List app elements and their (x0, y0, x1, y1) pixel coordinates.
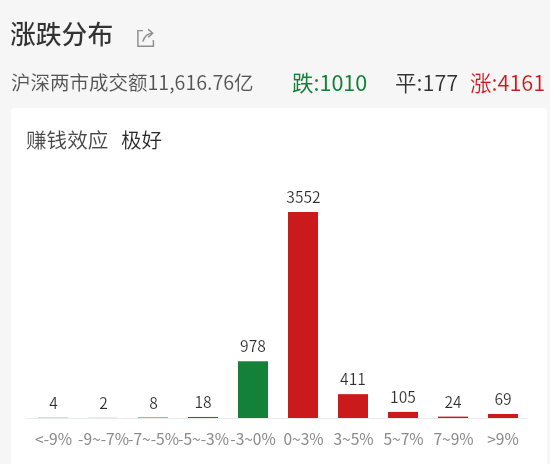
staticText: 跌:1010 (292, 66, 368, 96)
staticText: 0~3% (283, 427, 324, 448)
staticText: 赚钱效应 (26, 124, 109, 154)
staticText: 69 (494, 387, 512, 408)
staticText: 沪深两市成交额11,616.76亿 (11, 67, 254, 95)
staticText: -7~-5% (128, 427, 179, 448)
staticText: >9% (487, 427, 519, 448)
staticText: 18 (194, 390, 212, 411)
button[interactable]: Share (133, 24, 161, 52)
staticText: 平:177 (395, 66, 459, 96)
button[interactable] (11, 108, 547, 464)
staticText: 7~9% (433, 427, 474, 448)
button[interactable]: 赚钱效应 (22, 124, 167, 154)
staticText: 4 (49, 391, 58, 412)
staticText: 3552 (286, 185, 321, 206)
staticText: -3~0% (230, 427, 276, 448)
staticText: 5~7% (383, 427, 424, 448)
staticText: 2 (99, 391, 108, 412)
button[interactable]: 涨跌分布 (6, 10, 122, 54)
staticText: -5~-3% (178, 427, 229, 448)
staticText: 涨跌分布 (10, 14, 114, 51)
staticText: 8 (149, 391, 158, 412)
staticText: 24 (444, 390, 462, 411)
staticText: 涨:4161 (470, 66, 546, 96)
staticText: 3~5% (333, 427, 374, 448)
staticText: <-9% (35, 427, 72, 448)
staticText: -9~-7% (78, 427, 129, 448)
staticText: 极好 (121, 124, 163, 154)
staticText: 411 (340, 367, 366, 388)
staticText: 105 (390, 385, 416, 406)
staticText: 978 (240, 334, 266, 355)
